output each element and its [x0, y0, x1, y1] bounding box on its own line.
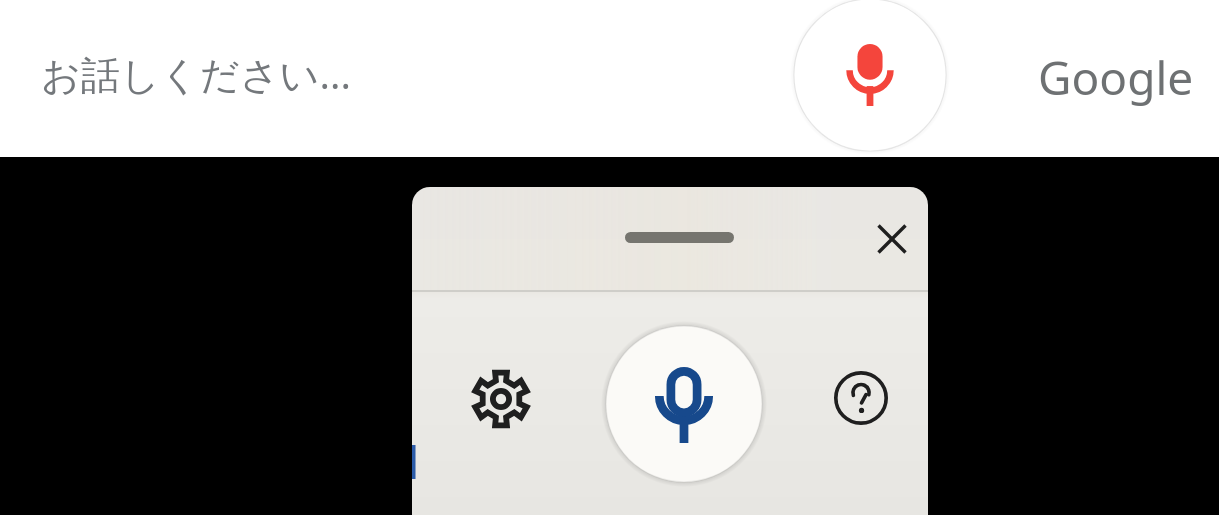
button[interactable]: Close: [853, 200, 928, 278]
button[interactable]: Help: [823, 360, 899, 436]
staticText: お話しください...: [41, 47, 351, 100]
button[interactable]: Settings: [463, 361, 539, 437]
button[interactable]: Google: [1038, 46, 1194, 109]
button[interactable]: Microphone: [601, 321, 767, 487]
button[interactable]: Voice search microphone: [793, 0, 947, 154]
button[interactable]: Drag handle: [625, 232, 734, 243]
